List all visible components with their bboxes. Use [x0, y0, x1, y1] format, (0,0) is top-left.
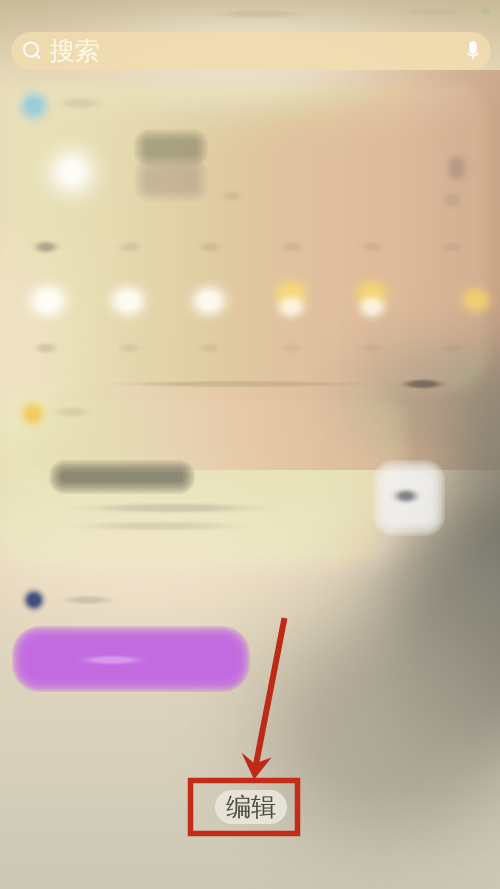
button[interactable]: 搜索 — [11, 32, 490, 70]
staticText: 搜索 — [49, 35, 99, 66]
staticText: 编辑 — [226, 791, 276, 822]
button[interactable]: 编辑 — [215, 790, 287, 824]
